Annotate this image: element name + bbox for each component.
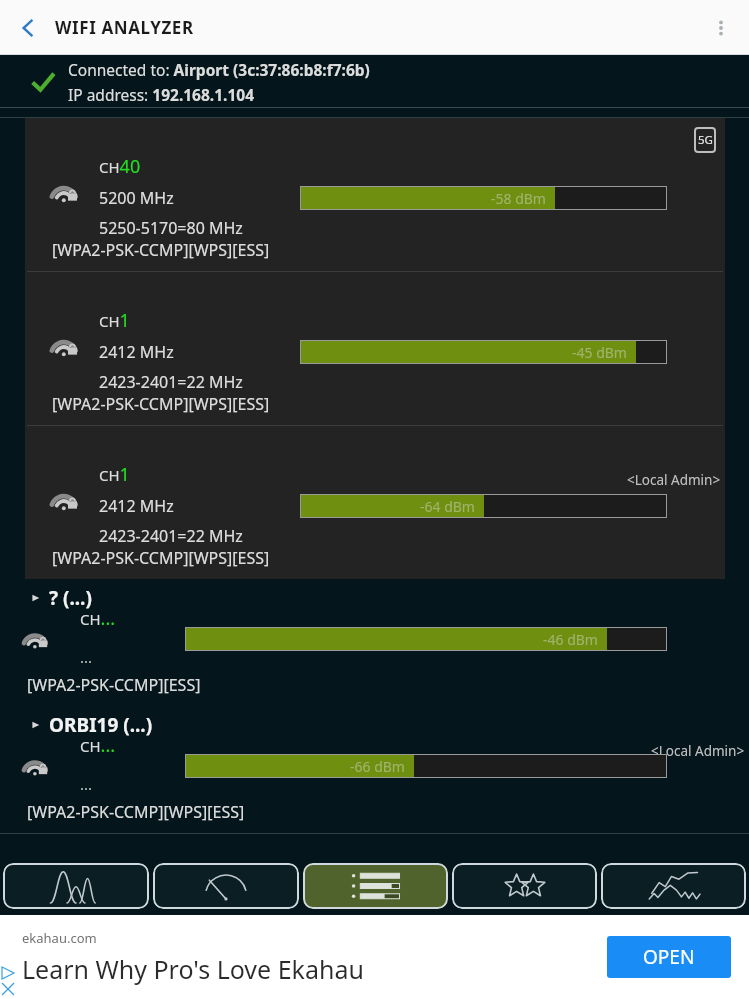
staticText: ekahau.com bbox=[22, 929, 97, 947]
button[interactable]: ? (...) bbox=[0, 579, 749, 706]
staticText: <Local Admin> bbox=[627, 471, 721, 489]
button[interactable]: Back bbox=[6, 6, 50, 50]
button[interactable]: CH1 bbox=[25, 272, 725, 425]
staticText: [WPA2-PSK-CCMP][ESS] bbox=[27, 674, 201, 696]
staticText: [WPA2-PSK-CCMP][WPS][ESS] bbox=[52, 547, 270, 569]
staticText: [WPA2-PSK-CCMP][WPS][ESS] bbox=[52, 239, 270, 261]
staticText: 5250-5170=80 MHz bbox=[99, 217, 243, 239]
staticText: 2412 MHz bbox=[99, 341, 174, 363]
staticText: CH1 bbox=[99, 308, 130, 333]
button[interactable]: ORBI19 (...) bbox=[0, 706, 749, 833]
button[interactable]: Signal history bbox=[601, 863, 746, 909]
staticText: 2412 MHz bbox=[99, 495, 174, 517]
staticText: ? (...) bbox=[49, 585, 92, 611]
staticText: 5200 MHz bbox=[99, 187, 174, 209]
button[interactable]: Channel graph bbox=[3, 863, 149, 909]
staticText: CH1 bbox=[99, 462, 130, 487]
button[interactable]: OPEN bbox=[607, 936, 731, 978]
button[interactable]: Time graph bbox=[153, 863, 299, 909]
button[interactable]: Favorites bbox=[452, 863, 597, 909]
staticText: CH... bbox=[80, 733, 116, 758]
staticText: Connected to: Airport (3c:37:86:b8:f7:6b… bbox=[68, 59, 370, 80]
staticText: [WPA2-PSK-CCMP][WPS][ESS] bbox=[27, 801, 245, 823]
button[interactable]: Access point list bbox=[303, 863, 448, 909]
staticText: IP address: 192.168.1.104 bbox=[68, 84, 255, 105]
staticText: ... bbox=[80, 647, 93, 667]
button[interactable]: 5G bbox=[25, 118, 725, 271]
staticText: -45 dBm bbox=[572, 343, 627, 362]
staticText: ORBI19 (...) bbox=[49, 712, 153, 738]
staticText: 2423-2401=22 MHz bbox=[99, 525, 243, 547]
staticText: Learn Why Pro's Love Ekahau bbox=[22, 952, 364, 986]
staticText: 5G bbox=[698, 132, 713, 148]
button[interactable]: CH1 bbox=[25, 426, 725, 579]
staticText: -64 dBm bbox=[420, 497, 475, 516]
staticText: 2423-2401=22 MHz bbox=[99, 371, 243, 393]
button[interactable]: More options bbox=[699, 6, 743, 50]
staticText: -58 dBm bbox=[491, 189, 546, 208]
staticText: <Local Admin> bbox=[651, 742, 745, 760]
staticText: OPEN bbox=[643, 944, 695, 970]
staticText: -46 dBm bbox=[543, 630, 598, 649]
staticText: [WPA2-PSK-CCMP][WPS][ESS] bbox=[52, 393, 270, 415]
staticText: -66 dBm bbox=[350, 757, 405, 776]
staticText: WIFI ANALYZER bbox=[55, 16, 194, 39]
staticText: CH40 bbox=[99, 154, 141, 179]
staticText: CH... bbox=[80, 606, 116, 631]
staticText: ... bbox=[80, 774, 93, 794]
